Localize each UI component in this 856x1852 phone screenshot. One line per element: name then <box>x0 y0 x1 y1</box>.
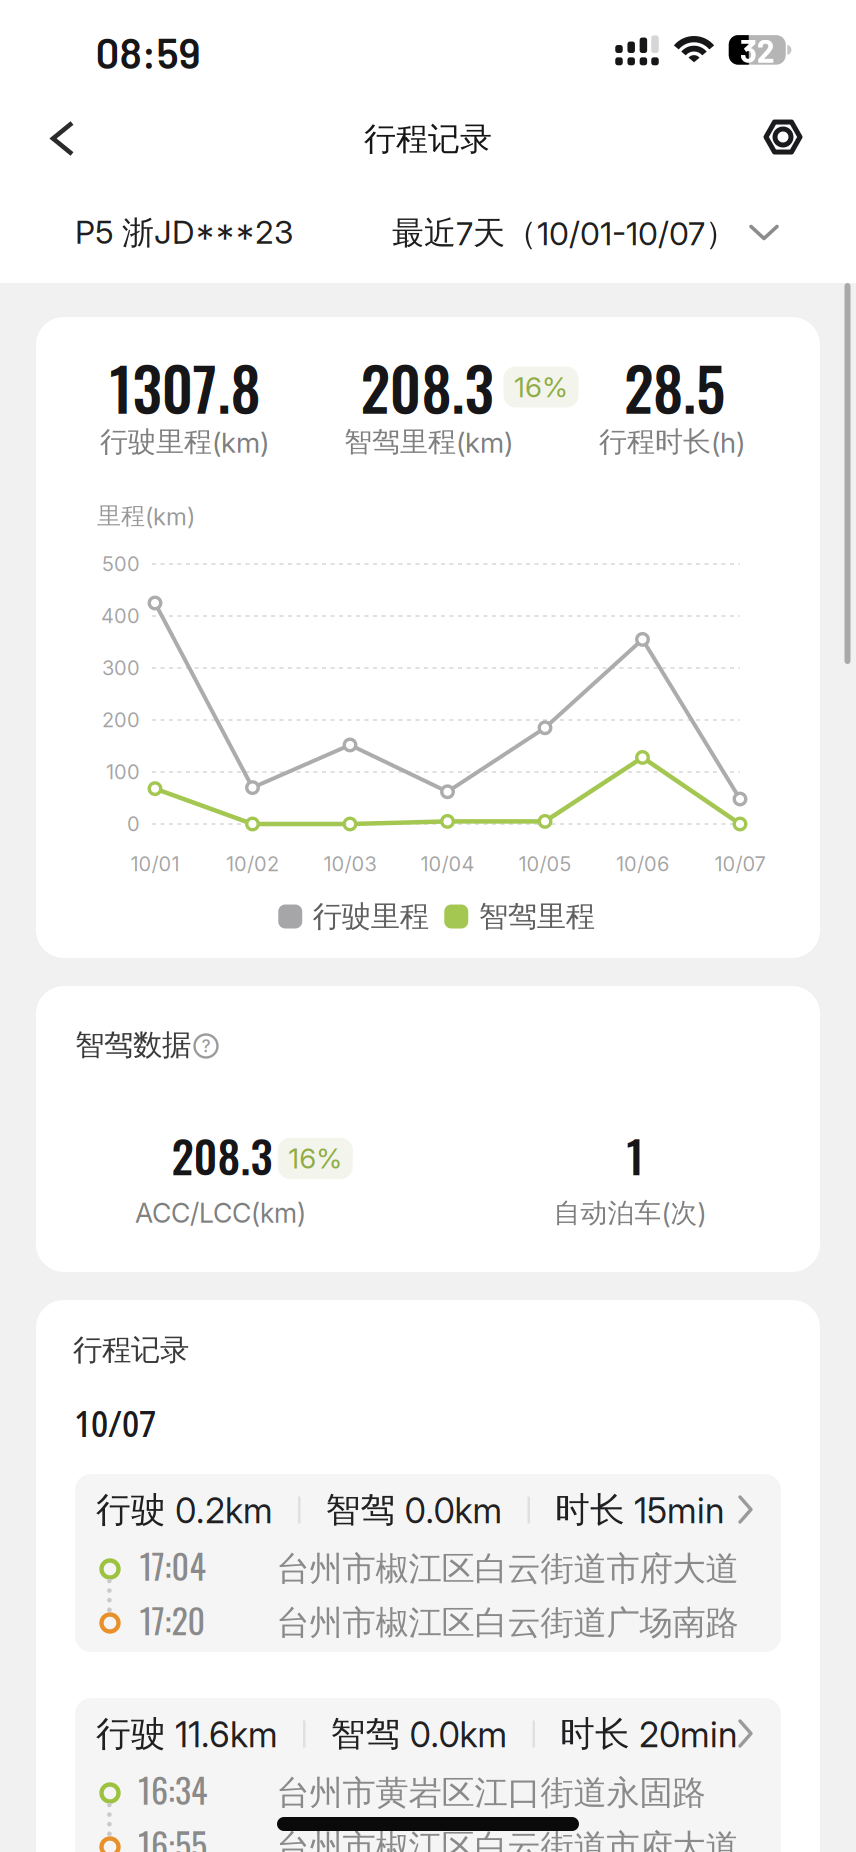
staticText: 行驶 0.2km <box>96 1489 273 1531</box>
staticText: 行程时长(h) <box>599 425 745 459</box>
staticText: 100 <box>106 760 140 784</box>
staticText: 台州市黄岩区江口街道永固路 <box>276 1772 705 1813</box>
button[interactable]: Settings <box>761 115 805 159</box>
staticText: 智驾里程 <box>479 898 595 934</box>
staticText: 08:59 <box>95 27 200 77</box>
button[interactable]: 行驶 0.2km <box>75 1474 781 1652</box>
staticText: 1307.8 <box>109 343 260 431</box>
staticText: 10/02 <box>226 852 279 876</box>
staticText: 300 <box>102 656 140 680</box>
staticText: 10/07 <box>714 852 765 876</box>
staticText: ACC/LCC(km) <box>135 1197 306 1229</box>
staticText: 智驾 0.0km <box>325 1489 502 1531</box>
staticText: 32 <box>740 31 775 69</box>
staticText: 台州市椒江区白云街道市府大道 <box>276 1548 738 1589</box>
staticText: 1 <box>626 1122 643 1188</box>
staticText: 台州市椒江区白云街道市府大道 <box>276 1826 738 1852</box>
staticText: 208.3 <box>171 1122 272 1188</box>
staticText: 28.5 <box>624 343 725 431</box>
staticText: ? <box>201 1036 210 1056</box>
staticText: 行程记录 <box>364 119 492 159</box>
staticText: 10/04 <box>420 852 474 876</box>
staticText: 10/07 <box>74 1398 156 1447</box>
staticText: 自动泊车(次) <box>553 1197 706 1229</box>
staticText: 16% <box>514 370 568 403</box>
staticText: 16% <box>288 1142 342 1175</box>
staticText: 17:20 <box>139 1595 205 1645</box>
button[interactable]: 最近7天（10/01-10/07） <box>278 208 778 258</box>
staticText: 智驾数据 <box>75 1027 191 1063</box>
staticText: 200 <box>102 708 140 732</box>
staticText: 时长 15min <box>555 1489 724 1531</box>
staticText: 16:34 <box>138 1764 207 1815</box>
staticText: P5 浙JD***23 <box>75 213 293 253</box>
staticText: 208.3 <box>360 343 493 431</box>
staticText: 时长 20min <box>560 1713 737 1755</box>
staticText: 智驾里程(km) <box>344 425 513 459</box>
staticText: 智驾 0.0km <box>330 1713 507 1755</box>
staticText: 500 <box>102 552 140 576</box>
staticText: 10/05 <box>518 852 571 876</box>
staticText: 400 <box>101 604 140 628</box>
staticText: 0 <box>127 812 140 836</box>
staticText: 16:55 <box>138 1819 207 1852</box>
staticText: 行驶 11.6km <box>96 1713 278 1755</box>
button[interactable]: 行驶 11.6km <box>75 1698 781 1852</box>
button[interactable]: Help <box>191 1031 221 1061</box>
staticText: 10/03 <box>323 852 376 876</box>
staticText: 行驶里程 <box>313 898 429 934</box>
staticText: 里程(km) <box>97 501 195 531</box>
staticText: 最近7天（10/01-10/07） <box>392 213 737 253</box>
staticText: 行程记录 <box>73 1332 189 1368</box>
staticText: 17:04 <box>139 1540 205 1591</box>
button[interactable]: P5 浙JD***23 <box>75 208 355 258</box>
button[interactable]: Back <box>52 122 73 155</box>
staticText: 10/01 <box>130 852 179 876</box>
staticText: 行驶里程(km) <box>100 425 269 459</box>
staticText: 台州市椒江区白云街道广场南路 <box>276 1602 738 1643</box>
staticText: 10/06 <box>616 852 669 876</box>
